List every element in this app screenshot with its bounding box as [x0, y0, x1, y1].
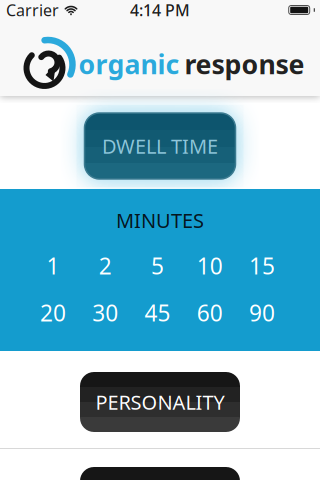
- button[interactable]: 1: [27, 251, 79, 281]
- staticText: MINUTES: [116, 207, 204, 234]
- staticText: 2: [99, 251, 112, 281]
- staticText: 15: [249, 251, 275, 281]
- staticText: 30: [92, 298, 118, 328]
- staticText: 60: [197, 298, 223, 328]
- button[interactable]: 20: [27, 298, 79, 328]
- staticText: 90: [249, 298, 275, 328]
- button[interactable]: 2: [79, 251, 131, 281]
- button[interactable]: 60: [184, 298, 236, 328]
- button[interactable]: Next option: [80, 467, 240, 480]
- staticText: response: [184, 46, 304, 82]
- button[interactable]: 45: [131, 298, 184, 328]
- staticText: 4:14 PM: [130, 0, 190, 21]
- staticText: DWELL TIME: [102, 133, 218, 159]
- button[interactable]: 30: [79, 298, 131, 328]
- button[interactable]: 90: [236, 298, 288, 328]
- staticText: Carrier: [6, 0, 59, 21]
- staticText: PERSONALITY: [95, 389, 224, 415]
- button[interactable]: 5: [131, 251, 184, 281]
- staticText: 45: [144, 298, 170, 328]
- staticText: 1: [47, 251, 60, 281]
- button[interactable]: 15: [236, 251, 288, 281]
- staticText: 10: [197, 251, 223, 281]
- staticText: organic: [78, 46, 179, 82]
- button[interactable]: DWELL TIME: [84, 113, 235, 179]
- staticText: 20: [40, 298, 66, 328]
- staticText: 5: [151, 251, 164, 281]
- button[interactable]: PERSONALITY: [80, 372, 240, 432]
- button[interactable]: 10: [184, 251, 236, 281]
